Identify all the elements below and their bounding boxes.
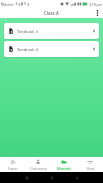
staticText: Share xyxy=(86,167,95,171)
button[interactable]: Exams xyxy=(0,157,25,172)
button[interactable]: Materials xyxy=(51,157,77,172)
button[interactable]: More options xyxy=(93,8,103,18)
button[interactable]: Share xyxy=(77,157,103,172)
staticText: Materials xyxy=(57,167,71,171)
button[interactable]: Home xyxy=(39,172,64,183)
button[interactable]: Textbook 3 xyxy=(4,23,99,39)
button[interactable]: Back xyxy=(64,172,89,183)
button[interactable]: Textbook 4 xyxy=(4,41,99,57)
button[interactable]: Recent apps xyxy=(14,172,39,183)
staticText: Textbook 3 xyxy=(17,29,38,35)
staticText: Exams xyxy=(8,167,18,171)
staticText: Classmates xyxy=(30,167,47,171)
staticText: 3:18 pm xyxy=(89,2,102,7)
staticText: Mobile xyxy=(3,2,14,7)
button[interactable]: Classmates xyxy=(25,157,51,172)
staticText: Textbook 4 xyxy=(17,47,38,53)
staticText: Class A xyxy=(44,10,59,16)
